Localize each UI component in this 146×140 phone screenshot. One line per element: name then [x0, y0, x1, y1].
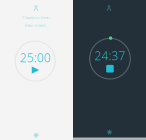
- button[interactable]: Stop timer: [90, 38, 130, 79]
- staticText: 24:37: [94, 47, 125, 63]
- staticText: 25:00: [20, 50, 51, 65]
- button[interactable]: Settings: [32, 131, 41, 139]
- button[interactable]: Settings: [105, 128, 114, 136]
- button[interactable]: Choose a client...: [0, 15, 73, 20]
- button[interactable]: Choose client: [104, 4, 114, 12]
- staticText: Choose a client...: [22, 15, 51, 20]
- button[interactable]: Enter a label...: [0, 23, 73, 28]
- staticText: Enter a label...: [24, 22, 48, 28]
- button[interactable]: Start timer: [15, 41, 55, 81]
- button[interactable]: Choose client: [31, 4, 41, 12]
